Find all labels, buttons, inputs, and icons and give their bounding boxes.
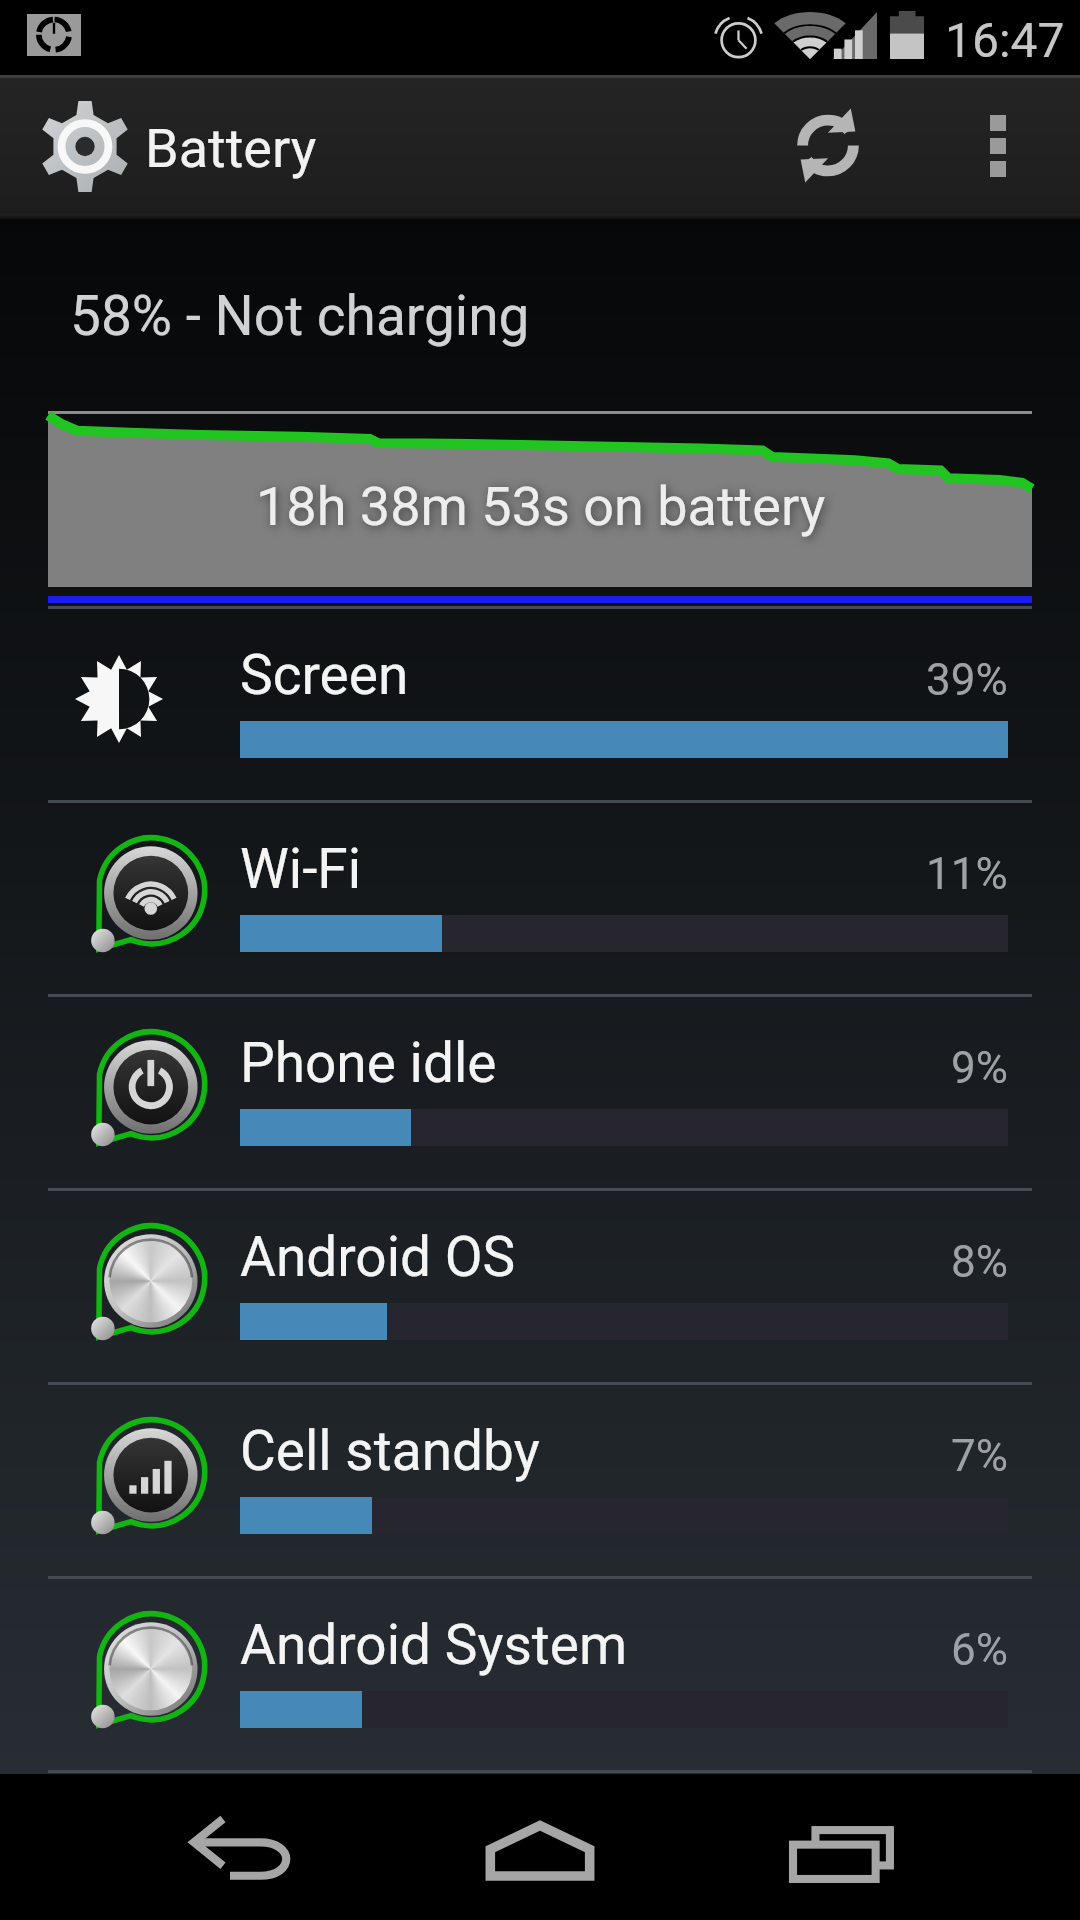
button[interactable]: Phone idle <box>0 997 1080 1188</box>
staticText: Phone idle <box>240 1031 951 1095</box>
staticText: 8% <box>951 1236 1008 1288</box>
staticText: 9% <box>951 1042 1008 1094</box>
staticText: 11% <box>926 848 1008 900</box>
button[interactable]: Android OS <box>0 1191 1080 1382</box>
staticText: Battery <box>145 117 317 180</box>
button[interactable]: Cell standby <box>0 1385 1080 1576</box>
staticText: Screen <box>240 643 926 707</box>
staticText: 39% <box>926 654 1008 706</box>
staticText: 6% <box>951 1624 1008 1676</box>
staticText: 18h 38m 53s on battery <box>256 475 826 538</box>
staticText: 16:47 <box>945 12 1065 68</box>
button[interactable]: More options <box>947 78 1047 219</box>
staticText: Wi-Fi <box>240 837 926 901</box>
button[interactable]: Wi-Fi <box>0 803 1080 994</box>
button[interactable]: Android System <box>0 1579 1080 1770</box>
button[interactable]: Recent apps <box>743 1774 943 1920</box>
staticText: Cell standby <box>240 1419 951 1483</box>
button[interactable]: Screen <box>0 609 1080 800</box>
button[interactable]: Back <box>140 1774 340 1920</box>
staticText: Android OS <box>240 1225 951 1289</box>
staticText: Android System <box>240 1613 951 1677</box>
button[interactable]: Home <box>440 1774 640 1920</box>
button[interactable]: Refresh <box>763 78 893 219</box>
staticText: 7% <box>951 1430 1008 1482</box>
staticText: 58% - Not charging <box>70 284 530 348</box>
